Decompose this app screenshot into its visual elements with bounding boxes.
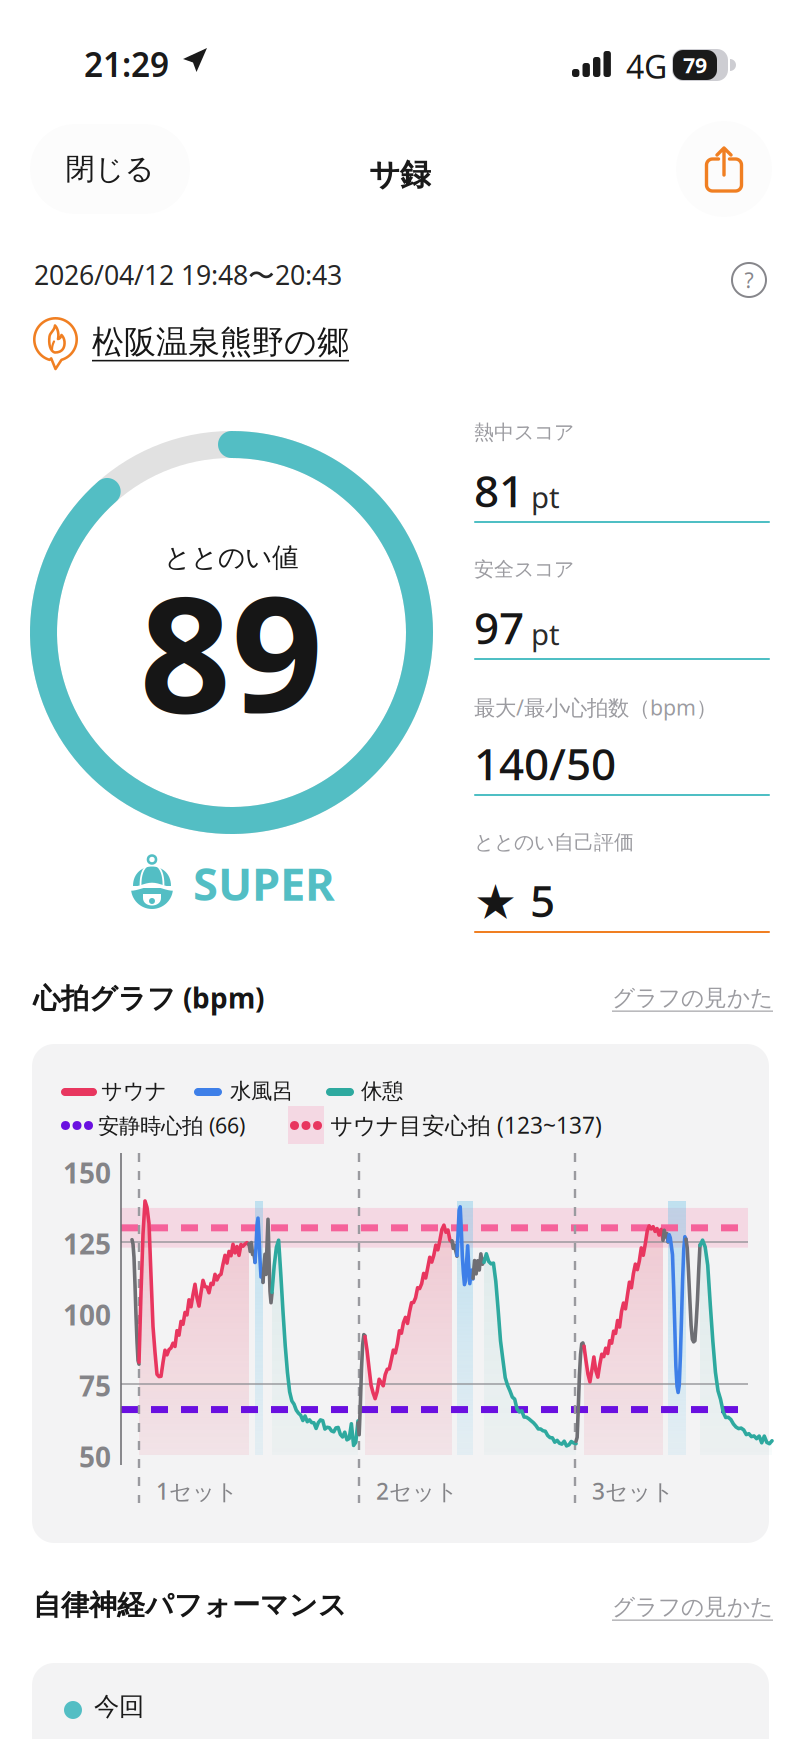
staticText: 今回: [94, 1691, 144, 1722]
staticText: 5: [530, 871, 555, 929]
staticText: 松阪温泉熊野の郷: [92, 322, 349, 362]
staticText: グラフの見かた: [612, 984, 773, 1012]
staticText: 休憩: [361, 1078, 403, 1104]
staticText: 79: [683, 51, 707, 79]
staticText: pt: [531, 614, 560, 653]
staticText: 水風呂: [230, 1078, 293, 1104]
staticText: 97: [474, 598, 524, 656]
button[interactable]: 閉じる: [30, 124, 190, 214]
staticText: 閉じる: [65, 151, 154, 187]
staticText: 自律神経パフォーマンス: [33, 1588, 347, 1622]
button[interactable]: Share: [676, 121, 772, 217]
staticText: 50: [79, 1438, 111, 1475]
staticText: グラフの見かた: [612, 1593, 773, 1621]
staticText: 140/50: [474, 734, 616, 792]
staticText: 2026/04/12 19:48〜20:43: [34, 257, 342, 293]
staticText: ととのい値: [164, 541, 299, 574]
staticText: 125: [63, 1225, 111, 1262]
button[interactable]: 松阪温泉熊野の郷: [32, 314, 349, 370]
button[interactable]: グラフの見かた: [612, 984, 773, 1012]
staticText: 81: [474, 461, 524, 519]
staticText: 3セット: [592, 1476, 674, 1506]
staticText: 安全スコア: [474, 557, 574, 582]
staticText: 89: [139, 544, 323, 757]
staticText: ★: [474, 875, 517, 929]
staticText: 最大/最小心拍数（bpm）: [474, 693, 717, 721]
staticText: 熱中スコア: [474, 420, 574, 445]
staticText: 150: [63, 1154, 111, 1191]
staticText: pt: [531, 477, 560, 516]
staticText: サ録: [369, 156, 431, 194]
staticText: サウナ: [101, 1078, 167, 1104]
staticText: 安静時心拍 (66): [98, 1111, 245, 1139]
staticText: 21:29: [84, 42, 169, 86]
staticText: サウナ目安心拍 (123~137): [330, 1110, 602, 1140]
staticText: SUPER: [193, 853, 335, 913]
button[interactable]: グラフの見かた: [612, 1593, 773, 1621]
staticText: 4G: [626, 45, 667, 87]
staticText: 75: [79, 1367, 111, 1404]
staticText: 100: [63, 1296, 111, 1333]
staticText: ?: [744, 266, 753, 294]
staticText: 心拍グラフ (bpm): [33, 979, 264, 1016]
button[interactable]: Help: [732, 263, 766, 297]
staticText: ととのい自己評価: [474, 830, 634, 855]
staticText: 1セット: [156, 1476, 238, 1506]
staticText: 2セット: [376, 1476, 458, 1506]
